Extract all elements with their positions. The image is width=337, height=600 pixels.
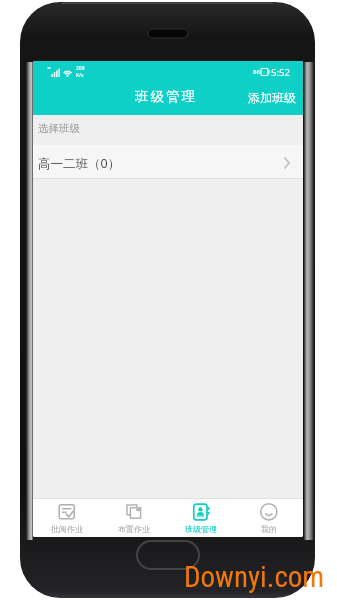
staticText: 添加班级 [248, 90, 296, 105]
staticText: 5:52 [271, 66, 290, 79]
staticText: 选择班级 [38, 122, 80, 135]
staticText: 高一二班（0） [38, 155, 121, 172]
button[interactable]: 布置作业 [100, 499, 167, 537]
staticText: 班级管理 [134, 88, 196, 105]
staticText: 批阅作业 [51, 524, 83, 534]
staticText: 86 [253, 68, 260, 76]
staticText: Downyi.com [184, 560, 325, 594]
staticText: K/s [76, 72, 84, 79]
staticText: 209 [76, 65, 85, 72]
button[interactable]: 班级管理 [167, 499, 235, 537]
staticText: 我的 [261, 524, 277, 534]
button[interactable]: 批阅作业 [33, 499, 100, 537]
button[interactable]: 添加班级 [248, 82, 296, 113]
staticText: 班级管理 [185, 524, 217, 534]
staticText: 布置作业 [118, 524, 150, 534]
button[interactable]: 我的 [235, 499, 303, 537]
button[interactable]: 高一二班（0） [33, 145, 303, 179]
